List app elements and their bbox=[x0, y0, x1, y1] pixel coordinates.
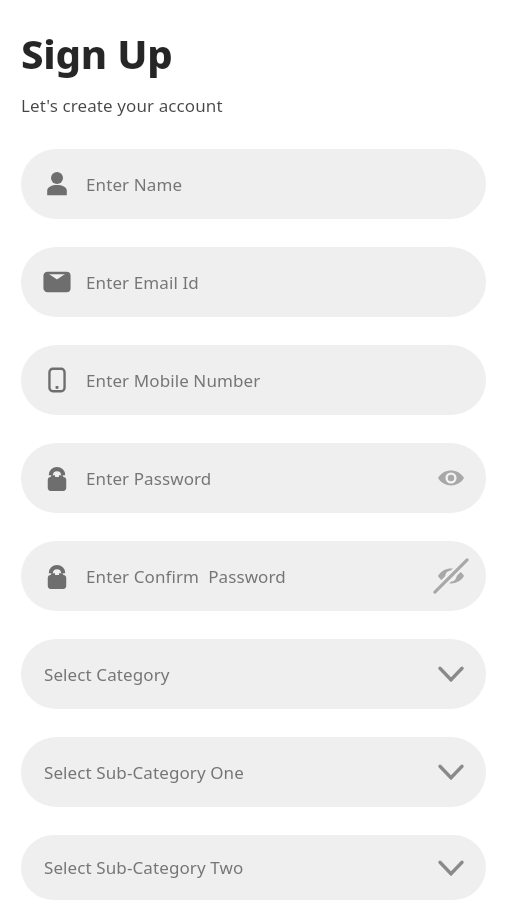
staticText: Select Sub-Category Two bbox=[44, 856, 244, 879]
button[interactable]: Enter Password bbox=[21, 443, 486, 513]
button[interactable]: Select Category bbox=[21, 639, 486, 709]
staticText: Enter Mobile Number bbox=[86, 369, 261, 392]
button[interactable]: Open dropdown bbox=[434, 657, 468, 691]
button[interactable]: Open dropdown bbox=[434, 851, 468, 885]
staticText: Enter Email Id bbox=[86, 271, 199, 294]
button[interactable]: Open dropdown bbox=[434, 755, 468, 789]
staticText: Select Sub-Category One bbox=[44, 761, 244, 784]
staticText: Enter Password bbox=[86, 467, 212, 490]
staticText: Enter Name bbox=[86, 173, 183, 196]
staticText: Select Category bbox=[44, 663, 170, 686]
button[interactable]: Hide password bbox=[434, 559, 468, 593]
staticText: Sign Up bbox=[21, 26, 173, 80]
staticText: Let's create your account bbox=[21, 94, 223, 117]
staticText: Enter Confirm Password bbox=[86, 565, 286, 588]
button[interactable]: Enter Email Id bbox=[21, 247, 486, 317]
button[interactable]: Enter Name bbox=[21, 149, 486, 219]
button[interactable]: Select Sub-Category One bbox=[21, 737, 486, 807]
button[interactable]: Select Sub-Category Two bbox=[21, 835, 486, 900]
button[interactable]: Enter Mobile Number bbox=[21, 345, 486, 415]
button[interactable]: Show password bbox=[434, 461, 468, 495]
button[interactable]: Enter Confirm Password bbox=[21, 541, 486, 611]
